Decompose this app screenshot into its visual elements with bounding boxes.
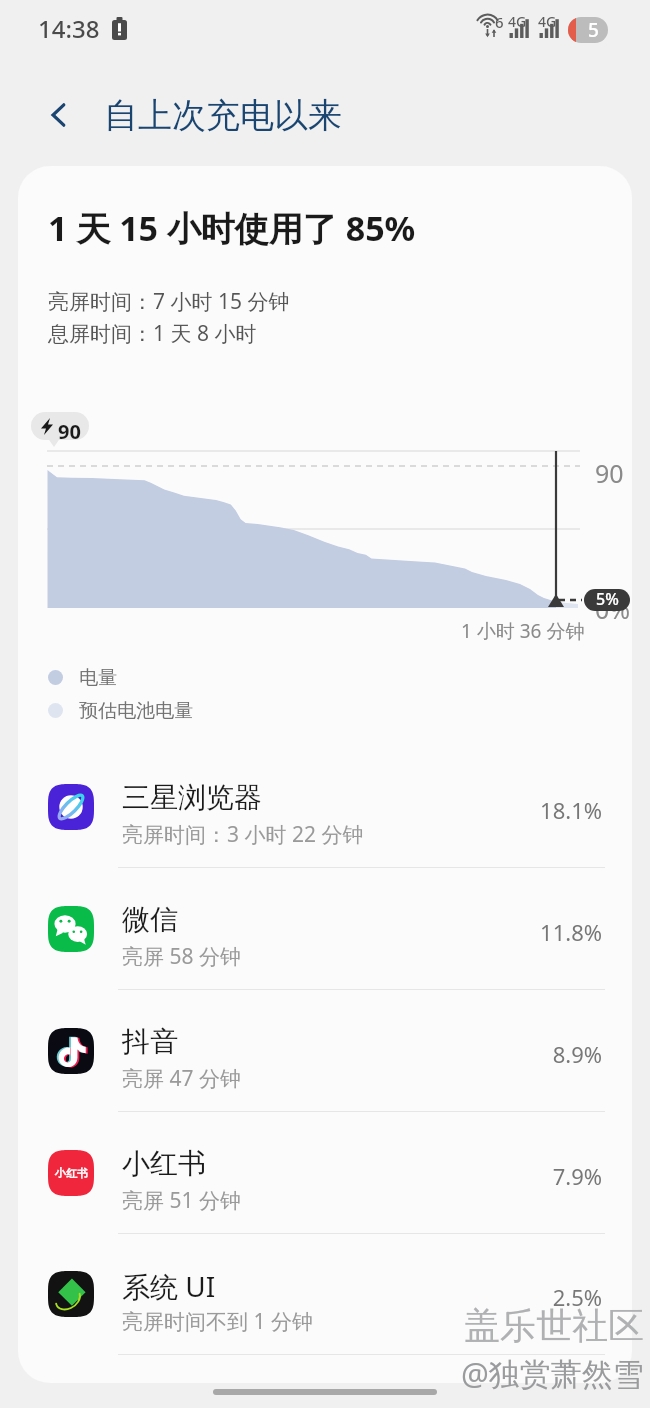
staticText: 亮屏时间不到 1 分钟	[122, 1307, 313, 1336]
staticText: 8.9%	[463, 1039, 602, 1069]
staticText: 自上次充电以来	[104, 94, 342, 137]
staticText: 抖音	[122, 1024, 178, 1059]
staticText: 亮屏时间：3 小时 22 分钟	[122, 820, 364, 849]
staticText: 14:38	[38, 12, 100, 45]
staticText: 1 小时 36 分钟	[461, 618, 585, 644]
staticText: 微信	[122, 902, 178, 937]
button[interactable]: 系统 UI	[18, 1233, 632, 1355]
staticText: 亮屏 58 分钟	[122, 942, 241, 971]
staticText: 电量	[79, 666, 117, 690]
staticText: 预估电池电量	[79, 699, 193, 723]
staticText: 小红书	[55, 1166, 88, 1180]
button[interactable]: Back	[34, 90, 84, 140]
button[interactable]: 小红书	[18, 1112, 632, 1234]
staticText: 亮屏 51 分钟	[122, 1186, 241, 1215]
staticText: 亮屏 47 分钟	[122, 1064, 241, 1093]
staticText: 三星浏览器	[122, 780, 262, 815]
staticText: 6	[495, 12, 504, 32]
staticText: 11.8%	[463, 917, 602, 947]
staticText: 0%	[595, 592, 631, 626]
staticText: 90	[595, 456, 624, 490]
staticText: 小红书	[122, 1146, 206, 1181]
button[interactable]: 微信	[18, 868, 632, 990]
staticText: 系统 UI	[122, 1267, 216, 1305]
staticText: 7.9%	[463, 1161, 602, 1191]
staticText: 5	[588, 17, 599, 43]
staticText: 90	[58, 418, 81, 445]
staticText: 5%	[596, 589, 619, 610]
staticText: 2.5%	[463, 1282, 602, 1312]
staticText: 18.1%	[463, 795, 602, 825]
staticText: 1 天 15 小时使用了 85%	[48, 205, 416, 251]
staticText: @独赏萧然雪	[461, 1352, 644, 1394]
button[interactable]: 抖音	[18, 990, 632, 1112]
staticText: 息屏时间：1 天 8 小时	[48, 319, 257, 348]
staticText: 盖乐世社区	[464, 1303, 644, 1348]
staticText: 4G	[508, 12, 527, 31]
staticText: 亮屏时间：7 小时 15 分钟	[48, 287, 290, 316]
button[interactable]: 三星浏览器	[18, 746, 632, 868]
staticText: 4G	[538, 12, 557, 31]
